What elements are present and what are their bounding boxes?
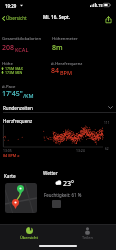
staticText: 208	[2, 43, 15, 53]
staticText: BPM	[60, 69, 73, 76]
staticText: 62	[105, 147, 109, 151]
staticText: 23°	[63, 179, 75, 189]
staticText: Gesamtkilokalorien	[2, 35, 42, 41]
staticText: Karte	[4, 173, 16, 179]
staticText: ⌀-Herzfrequenz	[51, 60, 83, 66]
staticText: 17'45"	[2, 89, 23, 99]
staticText: 111	[104, 121, 110, 125]
staticText: Teilen	[82, 235, 93, 240]
button[interactable]: Übersicht	[1, 14, 28, 22]
button[interactable]: Rundenzeiten	[0, 102, 116, 113]
button[interactable]: Teilen	[103, 14, 114, 25]
staticText: 175M MAX	[5, 66, 23, 71]
button[interactable]: Karte	[5, 183, 37, 213]
button[interactable]: Teilen	[58, 225, 116, 250]
staticText: Höhe	[2, 60, 13, 66]
staticText: 173M MIN	[5, 70, 23, 75]
staticText: 13:05	[3, 148, 12, 153]
staticText: 13:24	[76, 148, 85, 153]
staticText: 8m	[52, 43, 63, 53]
staticText: /KM	[23, 92, 34, 99]
staticText: Mi. 16. Sept.	[43, 14, 70, 20]
button[interactable]: 23°	[43, 177, 113, 211]
staticText: Feuchtigkeit: 61 %	[44, 192, 82, 198]
staticText: 84 BPM ⌀	[3, 153, 20, 158]
staticText: Höhenmeter	[52, 35, 78, 41]
staticText: KCAL	[15, 46, 29, 53]
staticText: 84	[51, 66, 60, 76]
staticText: ⌀-Pace	[2, 83, 16, 89]
staticText: Übersicht	[20, 235, 38, 240]
staticText: 19:29	[5, 3, 17, 9]
button[interactable]: Übersicht	[0, 225, 58, 250]
staticText: Wetter	[43, 170, 58, 176]
staticText: Übersicht	[6, 15, 27, 21]
staticText: Herzfrequenz	[3, 118, 33, 124]
staticText: Rundenzeiten	[3, 105, 33, 111]
staticText: LTE	[96, 3, 103, 9]
